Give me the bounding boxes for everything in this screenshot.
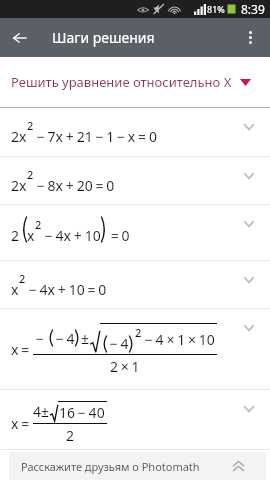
button[interactable]: Expand step	[228, 108, 270, 156]
staticText: 16 − 40	[59, 403, 105, 422]
staticText: 2	[27, 118, 34, 133]
staticText: x =	[11, 414, 33, 433]
staticText: 2	[135, 325, 142, 340]
staticText: − 4	[107, 334, 129, 353]
staticText: 8:39	[241, 1, 265, 17]
staticText: Решить уравнение относительно X	[11, 73, 232, 91]
button[interactable]: 2x	[0, 108, 270, 156]
button[interactable]: Back	[0, 18, 39, 57]
button[interactable]: x =	[0, 309, 270, 389]
button[interactable]: x =	[0, 390, 270, 449]
button[interactable]: More options	[231, 18, 270, 57]
staticText: − 4x + 10	[42, 226, 101, 245]
button[interactable]: Решить уравнение относительно X	[0, 57, 270, 107]
staticText: 2	[27, 167, 34, 182]
staticText: − 4	[53, 329, 75, 348]
staticText: x =	[11, 340, 33, 359]
button[interactable]: Расскажите друзьям о Photomath	[9, 452, 266, 480]
button[interactable]: Expand step	[228, 157, 270, 204]
staticText: 4±	[33, 402, 50, 421]
staticText: − 7x + 21 − 1 − x = 0	[34, 127, 157, 146]
staticText: Расскажите друзьям о Photomath	[21, 459, 200, 474]
staticText: −	[33, 329, 47, 348]
staticText: = 0	[108, 226, 130, 245]
staticText: − 4x + 10 = 0	[26, 280, 107, 299]
staticText: 2 × 1	[110, 357, 140, 376]
button[interactable]: 2	[0, 205, 270, 260]
button[interactable]: Expand step	[228, 390, 270, 449]
staticText: 2	[35, 217, 42, 232]
staticText: ±	[81, 329, 90, 348]
button[interactable]: Expand step	[228, 261, 270, 308]
staticText: 2	[19, 271, 26, 286]
staticText: 81%	[207, 3, 225, 15]
staticText: 2x	[11, 176, 27, 195]
staticText: x	[27, 226, 35, 245]
staticText: x	[11, 280, 19, 299]
staticText: Шаги решения	[52, 28, 155, 47]
staticText: 2	[11, 226, 20, 245]
staticText: 2	[66, 426, 75, 445]
button[interactable]: 2x	[0, 157, 270, 204]
button[interactable]: Expand step	[228, 309, 270, 389]
button[interactable]: Expand step	[228, 205, 270, 260]
staticText: − 4 × 1 × 10	[142, 330, 215, 349]
staticText: 2x	[11, 127, 27, 146]
staticText: − 8x + 20 = 0	[34, 176, 115, 195]
button[interactable]: x	[0, 261, 270, 308]
